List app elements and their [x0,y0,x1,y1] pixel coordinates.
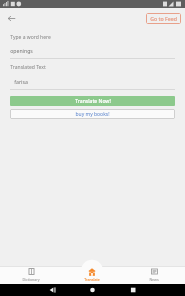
staticText: Translated Text [10,64,46,71]
staticText: News [149,277,159,282]
button[interactable]: Go to Feed [146,13,181,24]
button[interactable]: Dictionary [0,262,61,284]
staticText: Go to Feed [150,15,177,22]
staticText: buy my books! [75,111,110,118]
button[interactable]: Translate [61,262,123,284]
staticText: openings [10,47,33,54]
staticText: Type a word here [10,34,51,41]
staticText: Translate [84,277,100,282]
button[interactable]: Translate Now! [10,96,175,106]
staticText: Translate Now! [75,98,111,105]
button[interactable]: buy my books! [10,109,175,119]
button[interactable]: News [123,262,185,284]
staticText: Dictionary [22,277,40,282]
staticText: farisa [14,78,28,85]
button[interactable]: Back [3,10,19,26]
